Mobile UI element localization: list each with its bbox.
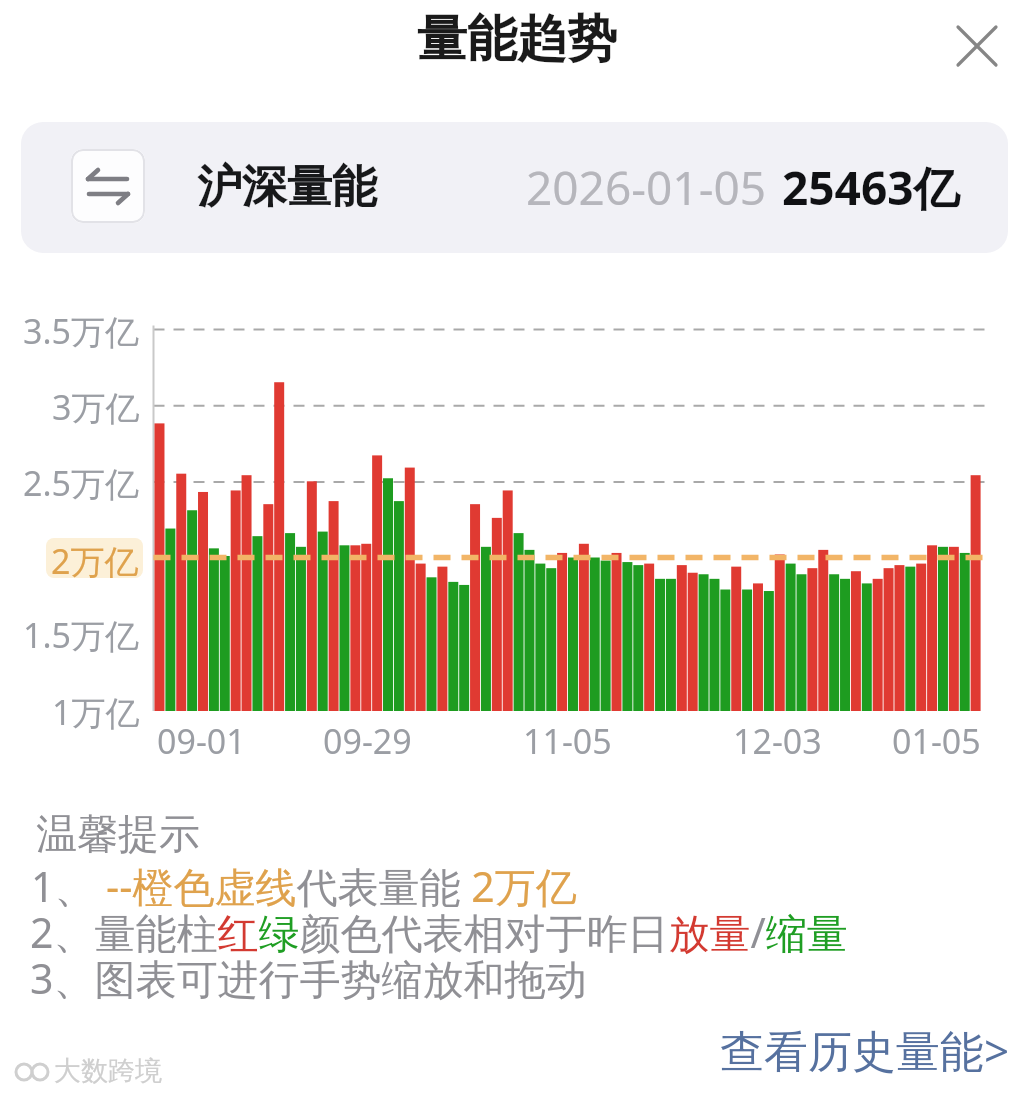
staticText: 09-29: [323, 718, 412, 760]
staticText: 2026-01-05: [526, 156, 767, 219]
staticText: 大数跨境: [54, 1054, 162, 1088]
staticText: 11-05: [523, 718, 612, 760]
staticText: 2、量能柱红绿颜色代表相对于昨日放量/缩量: [30, 904, 848, 960]
staticText: 1.5万亿: [23, 612, 140, 656]
staticText: 12-03: [733, 718, 822, 760]
staticText: 量能趋势: [417, 8, 617, 71]
staticText: 2万亿: [51, 538, 139, 578]
staticText: 3、图表可进行手势缩放和拖动: [30, 950, 587, 1006]
staticText: 温馨提示: [36, 809, 200, 861]
staticText: 01-05: [892, 718, 981, 760]
staticText: 09-01: [157, 718, 246, 760]
staticText: 沪深量能: [197, 159, 377, 216]
button[interactable]: 沪深量能: [21, 122, 1008, 253]
staticText: 1万亿: [52, 689, 140, 733]
button[interactable]: [71, 149, 145, 223]
staticText: 3万亿: [52, 384, 140, 428]
button[interactable]: 查看历史量能>: [700, 1018, 1010, 1082]
staticText: 25463亿: [782, 156, 960, 219]
button[interactable]: [951, 20, 1003, 72]
staticText: 查看历史量能>: [720, 1020, 1010, 1080]
staticText: 2.5万亿: [23, 460, 140, 504]
staticText: 1、 --橙色虚线代表量能 2万亿: [31, 858, 577, 914]
staticText: 3.5万亿: [23, 308, 140, 352]
